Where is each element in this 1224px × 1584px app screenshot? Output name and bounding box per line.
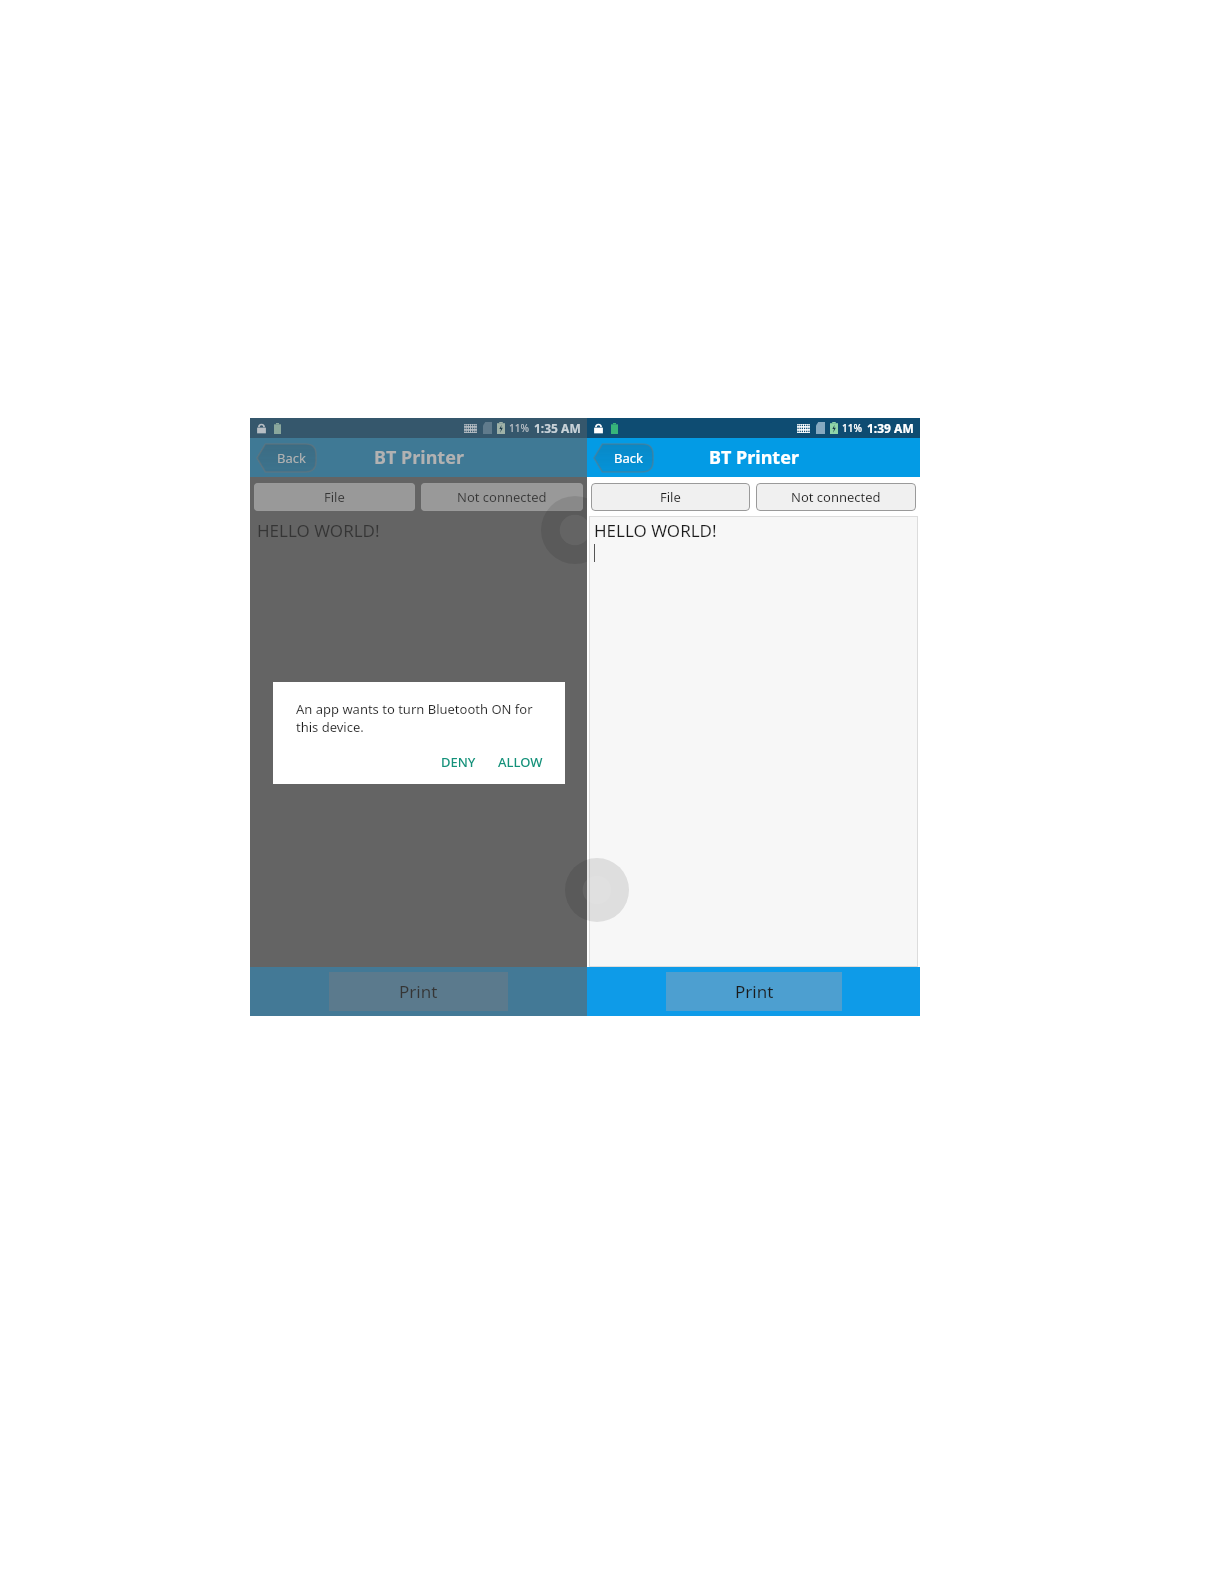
- staticText: BT Printer: [374, 445, 464, 470]
- staticText: Back: [614, 449, 643, 467]
- staticText: File: [660, 488, 681, 506]
- staticText: ALLOW: [498, 753, 543, 771]
- button[interactable]: File: [254, 483, 415, 511]
- staticText: 1:35 AM: [534, 420, 581, 436]
- staticText: 11%: [842, 421, 862, 435]
- button[interactable]: Back: [594, 444, 653, 472]
- button[interactable]: Print: [329, 972, 508, 1011]
- staticText: DENY: [441, 753, 476, 771]
- button[interactable]: Back: [257, 444, 316, 472]
- button[interactable]: Not connected: [756, 483, 916, 511]
- button[interactable]: Print: [666, 972, 842, 1011]
- button[interactable]: Not connected: [421, 483, 583, 511]
- staticText: File: [324, 488, 345, 506]
- staticText: An app wants to turn Bluetooth ON for th…: [296, 700, 547, 736]
- staticText: Print: [399, 980, 438, 1003]
- staticText: 11%: [509, 421, 529, 435]
- button[interactable]: ALLOW: [494, 750, 547, 774]
- staticText: HELLO WORLD!: [594, 519, 717, 542]
- button[interactable]: DENY: [437, 750, 480, 774]
- staticText: Back: [277, 449, 306, 467]
- button[interactable]: File: [591, 483, 750, 511]
- staticText: Not connected: [791, 488, 881, 506]
- staticText: Not connected: [457, 488, 547, 506]
- staticText: BT Printer: [709, 445, 799, 470]
- staticText: HELLO WORLD!: [257, 519, 380, 542]
- staticText: Print: [735, 980, 774, 1003]
- staticText: 1:39 AM: [867, 420, 914, 436]
